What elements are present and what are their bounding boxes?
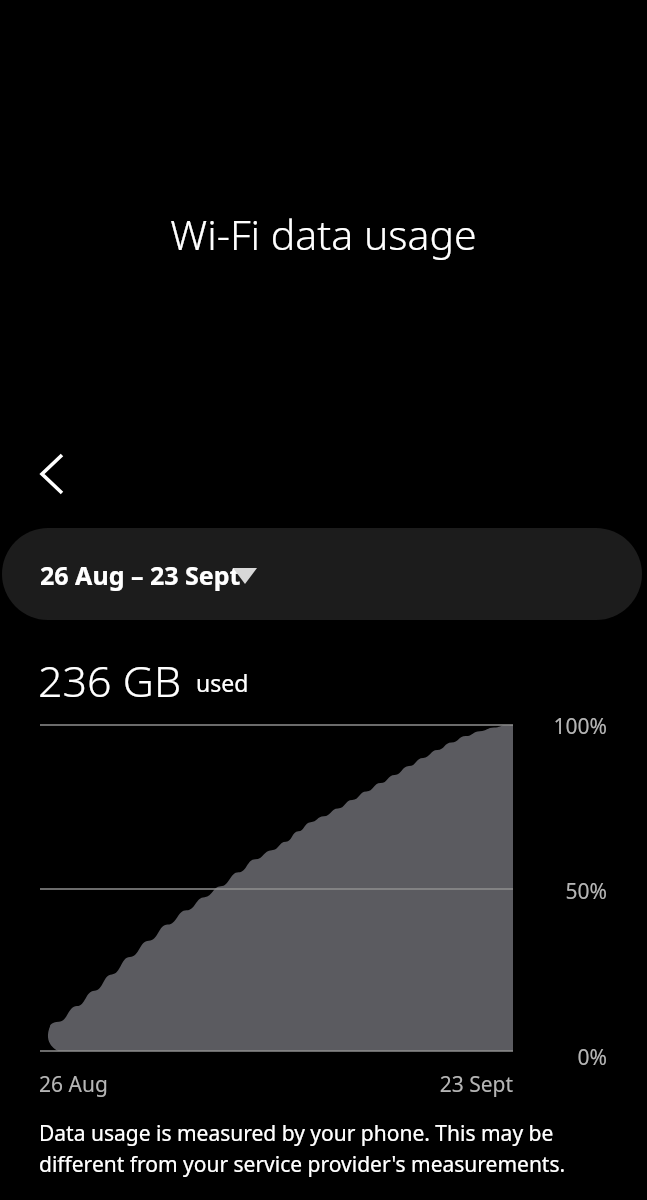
staticText: 100% xyxy=(407,712,607,741)
staticText: 26 Aug – 23 Sept xyxy=(40,558,241,592)
staticText: 236 GB xyxy=(38,651,182,710)
staticText: 23 Sept xyxy=(313,1070,513,1099)
button[interactable]: 26 Aug – 23 Sept xyxy=(2,528,642,620)
staticText: 26 Aug xyxy=(39,1070,108,1099)
staticText: 50% xyxy=(407,877,607,906)
staticText: used xyxy=(196,667,249,698)
staticText: Wi-Fi data usage xyxy=(0,206,647,262)
button[interactable]: Back xyxy=(16,446,82,504)
staticText: 0% xyxy=(407,1043,607,1072)
staticText: Data usage is measured by your phone. Th… xyxy=(39,1119,601,1178)
